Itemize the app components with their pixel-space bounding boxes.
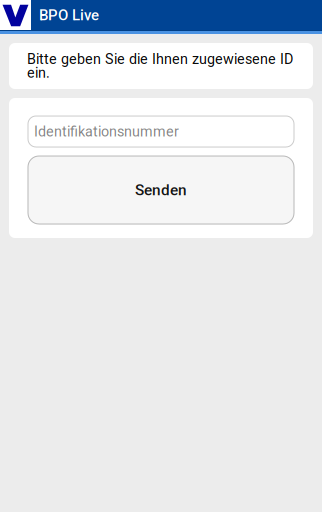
staticText: BPO Live: [39, 6, 99, 24]
staticText: Bitte geben Sie die Ihnen zugewiesene ID…: [27, 51, 293, 81]
staticText: Identifikationsnummer: [34, 123, 179, 140]
staticText: Senden: [135, 181, 187, 199]
button[interactable]: Senden: [28, 156, 294, 224]
